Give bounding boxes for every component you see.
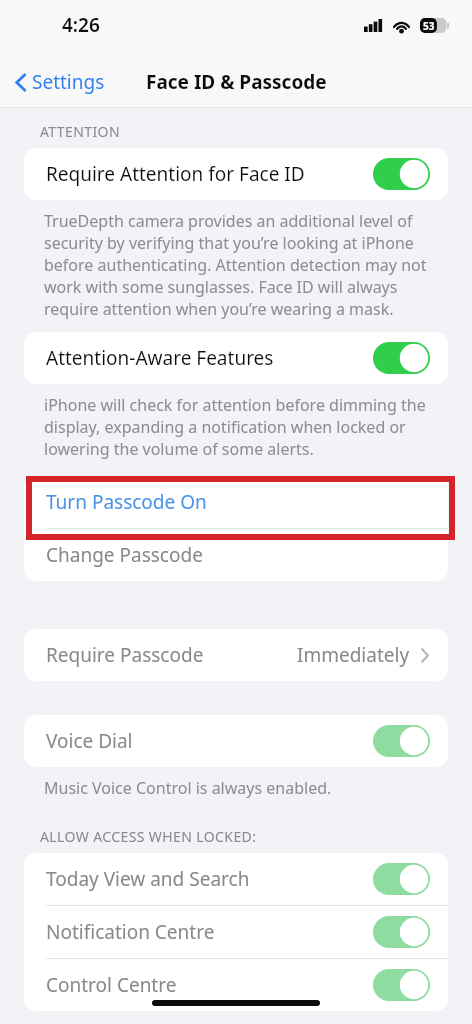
button[interactable]: Voice Dial <box>24 715 448 767</box>
staticText: Music Voice Control is always enabled. <box>44 777 332 799</box>
button[interactable]: Require Attention for Face ID <box>24 148 448 200</box>
button[interactable]: Turn Passcode On <box>24 476 448 528</box>
button[interactable]: Settings <box>0 63 115 101</box>
staticText: Require Attention for Face ID <box>46 161 305 187</box>
staticText: Immediately <box>297 642 410 668</box>
staticText: iPhone will check for attention before d… <box>44 394 442 460</box>
staticText: 4:26 <box>62 12 100 38</box>
staticText: Change Passcode <box>46 542 203 568</box>
staticText: ALLOW ACCESS WHEN LOCKED: <box>40 827 257 846</box>
staticText: Face ID & Passcode <box>146 69 327 95</box>
staticText: ATTENTION <box>40 122 120 141</box>
other: Toggle <box>373 725 430 757</box>
button[interactable]: Require Passcode <box>24 629 448 681</box>
staticText: TrueDepth camera provides an additional … <box>44 210 442 320</box>
staticText: Settings <box>32 69 105 95</box>
staticText: Control Centre <box>46 972 177 998</box>
staticText: Turn Passcode On <box>46 489 207 515</box>
staticText: Notification Centre <box>46 919 215 945</box>
button[interactable]: Attention-Aware Features <box>24 332 448 384</box>
staticText: Voice Dial <box>46 728 133 754</box>
staticText: Attention-Aware Features <box>46 345 274 371</box>
other: Toggle <box>373 969 430 1001</box>
button[interactable]: Change Passcode <box>24 529 448 581</box>
other: Toggle <box>373 916 430 948</box>
button[interactable]: Notification Centre <box>24 906 448 958</box>
button[interactable]: Today View and Search <box>24 853 448 905</box>
staticText: Today View and Search <box>46 866 250 892</box>
other: Toggle <box>373 342 430 374</box>
other: Toggle <box>373 158 430 190</box>
button[interactable]: Control Centre <box>24 959 448 1011</box>
staticText: Require Passcode <box>46 642 204 668</box>
staticText: 53 <box>423 19 435 33</box>
other: Toggle <box>373 863 430 895</box>
